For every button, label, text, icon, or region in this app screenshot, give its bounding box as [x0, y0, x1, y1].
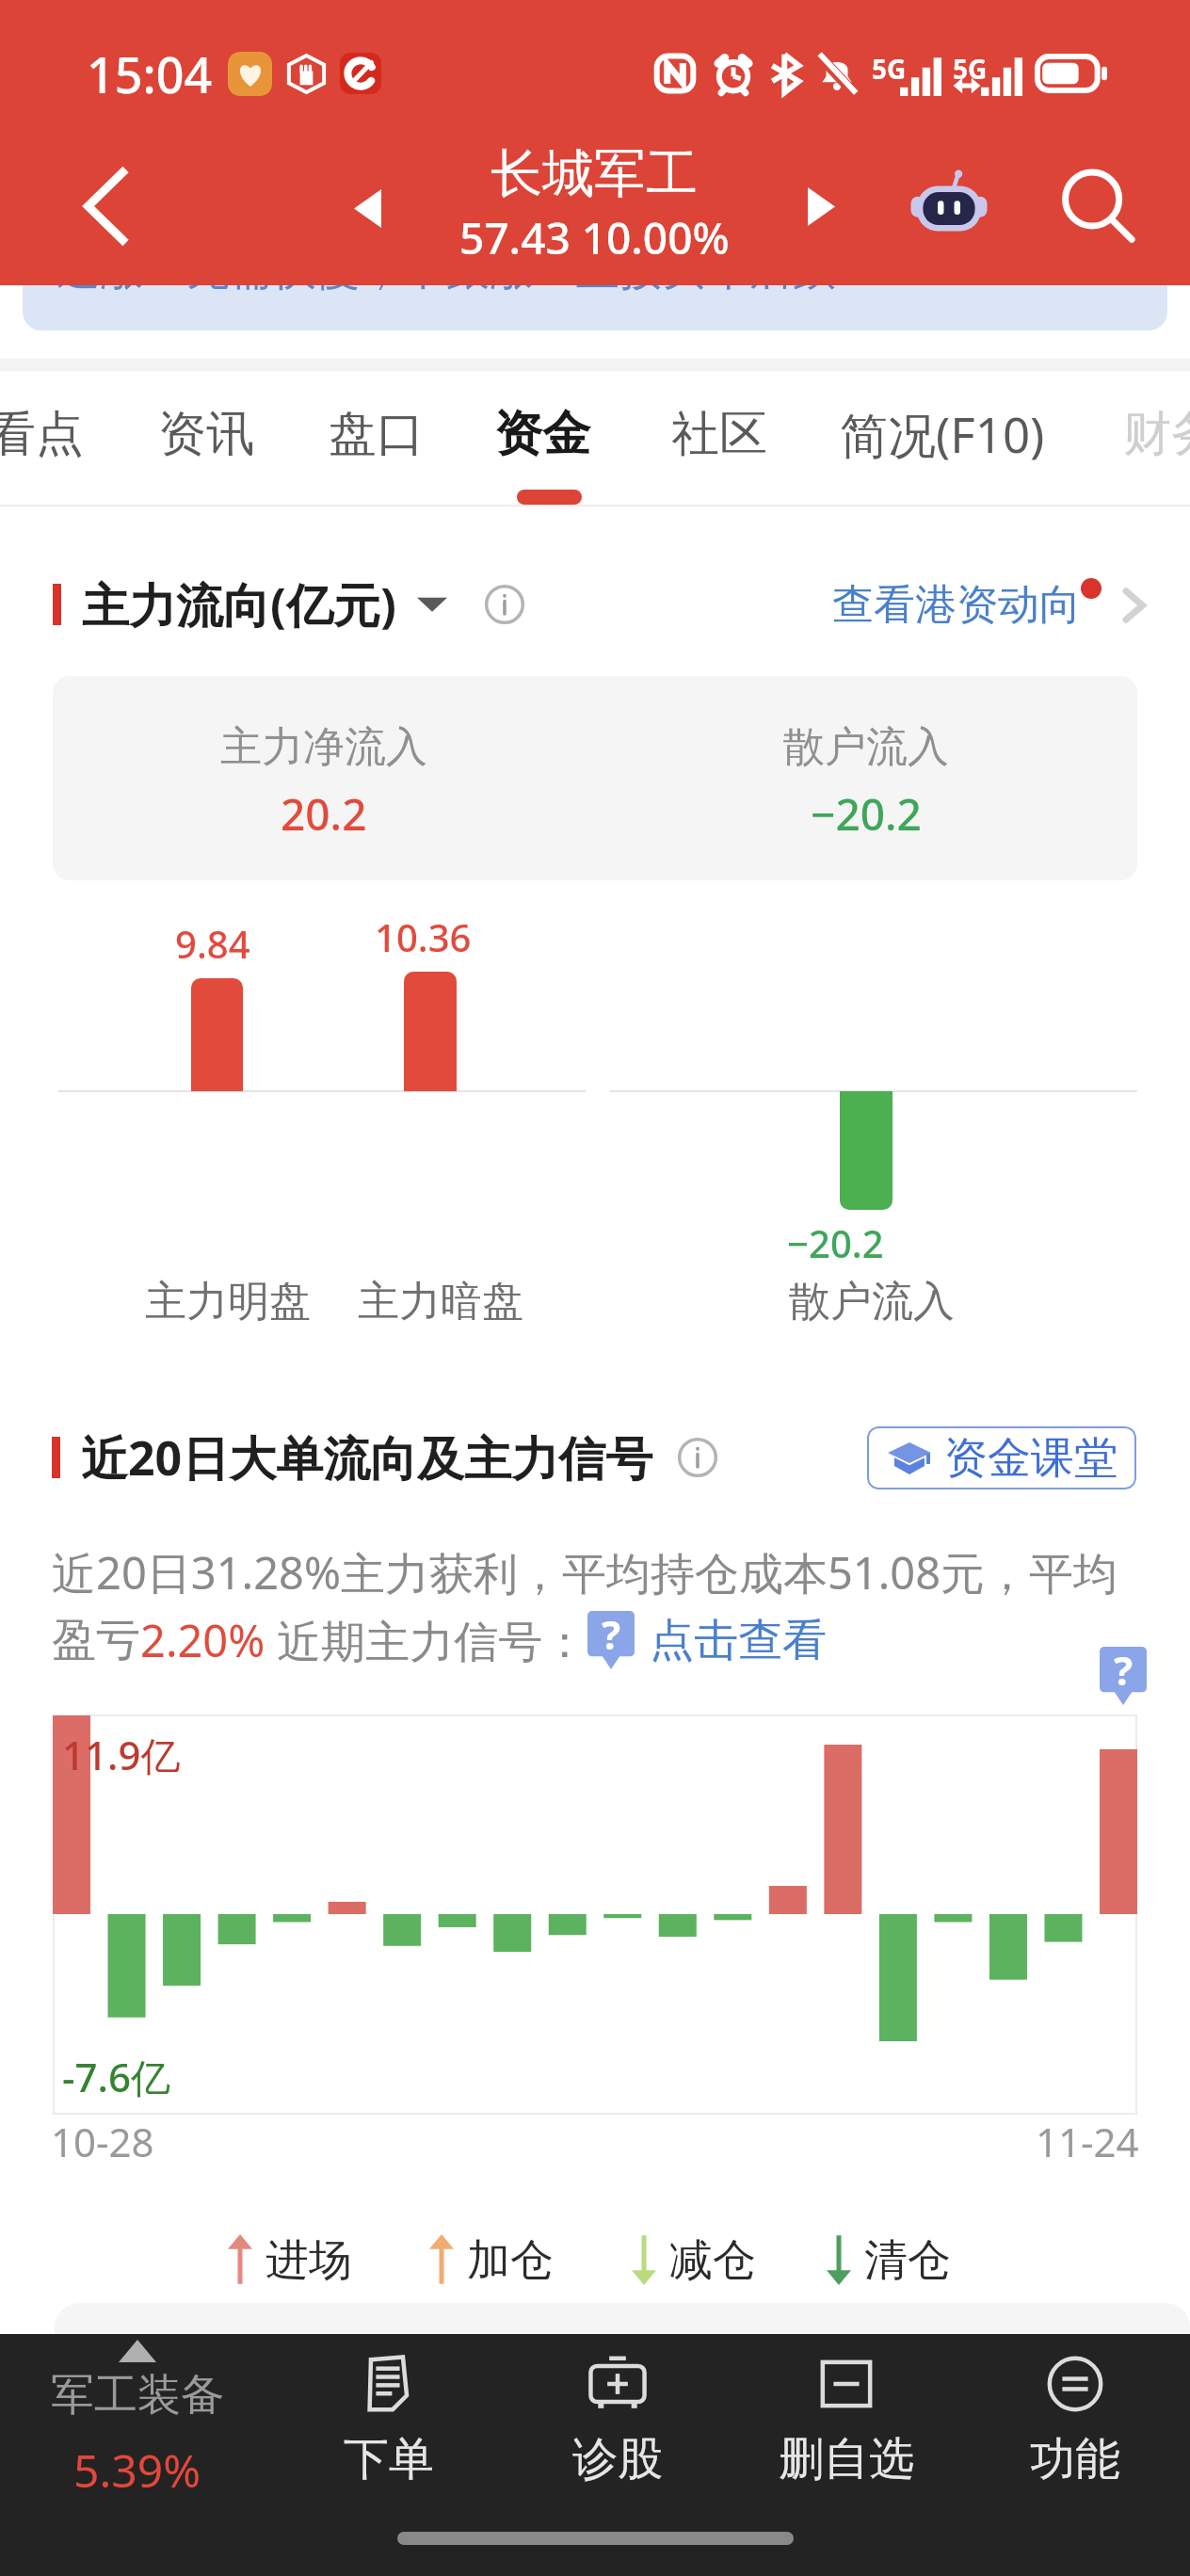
staticText: 散户流入 — [789, 1276, 955, 1328]
staticText: 近20日31.28%主力获利，平均持仓成本51.08元，平均 — [52, 1542, 1118, 1602]
button[interactable]: 功能 — [962, 2352, 1188, 2487]
staticText: 盈亏 — [52, 1613, 140, 1668]
staticText: 功能 — [1030, 2431, 1120, 2487]
staticText: 10-28 — [51, 2115, 154, 2168]
staticText: 清仓 — [864, 2233, 951, 2286]
button[interactable]: 主力净流入 — [53, 676, 1137, 880]
button[interactable]: 进场 — [228, 2233, 352, 2286]
button[interactable]: 加仓 — [429, 2233, 554, 2286]
staticText: 主力暗盘 — [358, 1276, 523, 1328]
staticText: 点击查看 — [650, 1613, 827, 1668]
staticText: ? — [1114, 1643, 1134, 1697]
button[interactable]: Search — [1049, 157, 1147, 255]
button[interactable]: 财务 — [1123, 371, 1190, 497]
staticText: 加仓 — [467, 2233, 554, 2286]
button[interactable]: Previous stock — [330, 170, 405, 246]
staticText: 11.9亿 — [62, 1728, 181, 1781]
button[interactable]: 看点 — [0, 371, 84, 497]
button[interactable]: 追涨？无需快慢，不跟涨！直接买午后跌！ — [23, 237, 1167, 330]
button[interactable]: 盘口 — [329, 371, 425, 497]
staticText: 20.2 — [281, 784, 367, 844]
button[interactable]: 减仓 — [632, 2233, 756, 2286]
button[interactable]: 简况(F10) — [840, 371, 1045, 497]
staticText: 诊股 — [572, 2431, 663, 2487]
staticText: −20.2 — [787, 1217, 884, 1268]
button[interactable]: Help — [1100, 1647, 1147, 1705]
staticText: 散户流入 — [783, 721, 949, 773]
button[interactable]: 删自选 — [733, 2352, 959, 2487]
button[interactable]: Help — [587, 1611, 635, 1669]
button[interactable]: 清仓 — [827, 2233, 951, 2286]
button[interactable]: 查看港资动向 — [832, 579, 1152, 631]
staticText: 看点 — [0, 404, 84, 464]
staticText: 盘口 — [329, 404, 425, 464]
staticText: 5G — [953, 51, 988, 87]
staticText: 简况(F10) — [840, 401, 1045, 467]
staticText: 主力净流入 — [220, 721, 427, 773]
staticText: 长城军工 — [490, 141, 698, 206]
staticText: 9.84 — [175, 918, 250, 969]
button[interactable]: Back — [57, 159, 152, 253]
staticText: 5G — [872, 51, 907, 87]
button[interactable]: AI assistant — [900, 154, 998, 252]
staticText: 11-24 — [1036, 2115, 1139, 2168]
staticText: 追涨？无需快慢，不跟涨！直接买午后跌！ — [56, 243, 879, 298]
button[interactable]: 长城军工 — [406, 141, 782, 267]
button[interactable]: 下单 — [276, 2352, 502, 2487]
staticText: 下单 — [344, 2431, 434, 2487]
staticText: 资讯 — [158, 404, 254, 464]
button[interactable]: 社区 — [671, 371, 767, 497]
staticText: 财务 — [1123, 404, 1190, 464]
staticText: 资金 — [494, 404, 590, 464]
staticText: 主力流向(亿元) — [82, 572, 396, 636]
staticText: −20.2 — [811, 784, 922, 844]
staticText: 2.20% — [140, 1610, 265, 1670]
staticText: -7.6亿 — [62, 2050, 170, 2103]
button[interactable]: 军工装备 — [24, 2340, 250, 2501]
button[interactable]: 资金 — [494, 371, 590, 497]
button[interactable]: 资金课堂 — [867, 1426, 1136, 1489]
staticText: ? — [602, 1607, 621, 1661]
staticText: 资金课堂 — [944, 1431, 1118, 1486]
staticText: 15:04 — [87, 40, 213, 107]
staticText: 10.36 — [375, 911, 472, 962]
staticText: 进场 — [265, 2233, 352, 2286]
staticText: 社区 — [671, 404, 767, 464]
staticText: 减仓 — [669, 2233, 756, 2286]
staticText: 删自选 — [779, 2431, 914, 2487]
staticText: 5.39% — [73, 2439, 201, 2501]
button[interactable]: 诊股 — [505, 2352, 731, 2487]
button[interactable]: Next stock — [783, 169, 859, 244]
button[interactable]: 资讯 — [158, 371, 254, 497]
staticText: 57.43 10.00% — [459, 208, 730, 267]
staticText: 近期主力信号： — [265, 1610, 587, 1670]
staticText: 近20日大单流向及主力信号 — [81, 1425, 653, 1489]
staticText: 查看港资动向 — [832, 579, 1081, 631]
staticText: 军工装备 — [51, 2368, 224, 2423]
staticText: 主力明盘 — [145, 1276, 311, 1328]
